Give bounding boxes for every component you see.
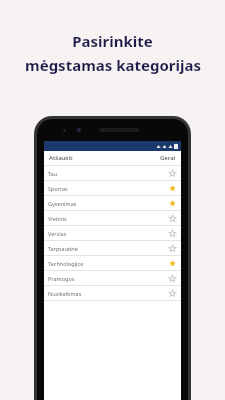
staticText: Vietinis (48, 215, 67, 222)
staticText: Tau (48, 170, 58, 177)
other: Favourite Technologijos (168, 259, 177, 268)
button[interactable]: Gyvenimas (44, 196, 181, 211)
staticText: Technologijos (48, 260, 84, 267)
button[interactable]: Atšaukti (48, 154, 74, 162)
other: Favourite Tau (168, 169, 177, 178)
button[interactable]: Gerai (159, 154, 177, 162)
other: Favourite Vietinis (168, 214, 177, 223)
other: Favourite Nusikaltimas (168, 289, 177, 298)
staticText: Pramogos (48, 275, 75, 282)
button[interactable]: Vietinis (44, 211, 181, 226)
other: Favourite Pramogos (168, 274, 177, 283)
staticText: Sportas (48, 185, 68, 192)
staticText: Atšaukti (49, 154, 73, 162)
staticText: mėgstamas kategorijas (25, 55, 201, 75)
button[interactable]: Tau (44, 166, 181, 181)
other: Favourite Verslas (168, 229, 177, 238)
staticText: Gerai (160, 154, 176, 162)
other: Favourite Sportas (168, 184, 177, 193)
other: Favourite Gyvenimas (168, 199, 177, 208)
other: Favourite Tarptautinė (168, 244, 177, 253)
staticText: Nusikaltimas (48, 290, 82, 297)
button[interactable]: Tarptautinė (44, 241, 181, 256)
staticText: Gyvenimas (48, 200, 77, 207)
button[interactable]: Sportas (44, 181, 181, 196)
button[interactable]: Pramogos (44, 271, 181, 286)
button[interactable]: Technologijos (44, 256, 181, 271)
button[interactable]: Nusikaltimas (44, 286, 181, 301)
button[interactable]: Verslas (44, 226, 181, 241)
staticText: Pasirinkite (72, 31, 153, 51)
staticText: Tarptautinė (48, 245, 78, 252)
staticText: Verslas (48, 230, 67, 237)
